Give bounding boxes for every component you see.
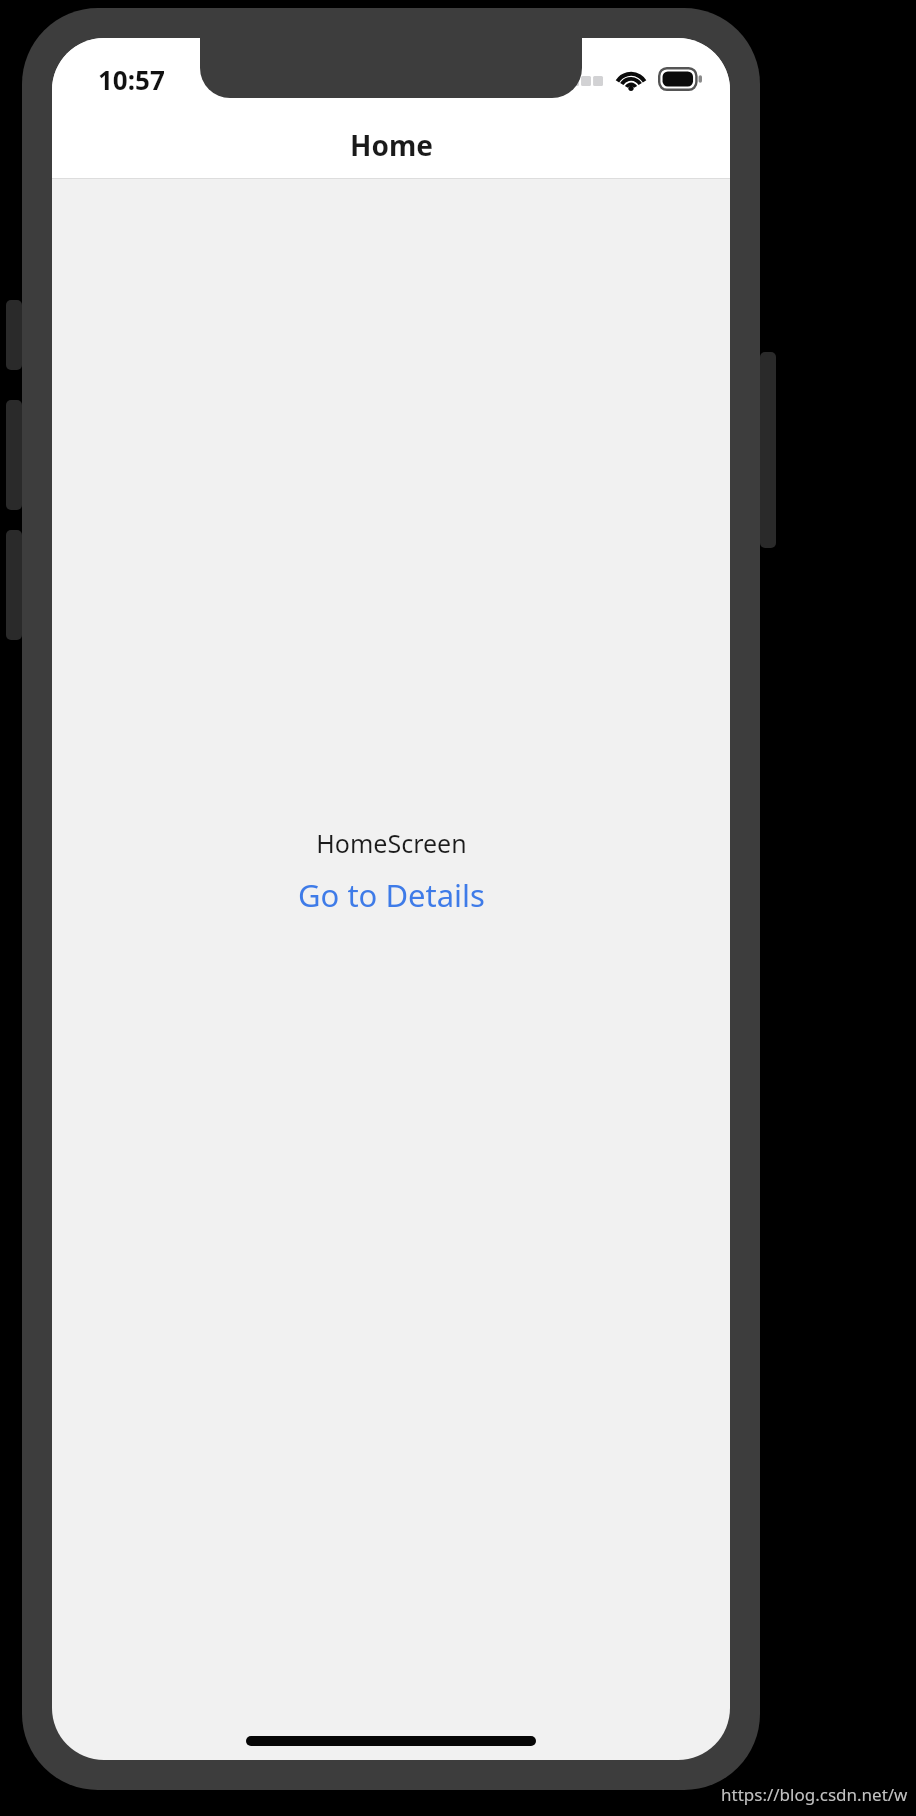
staticText: HomeScreen [316, 826, 467, 860]
staticText: Home [350, 126, 433, 164]
staticText: 10:57 [98, 62, 165, 97]
other: Power [760, 352, 776, 548]
other: Volume up [6, 400, 22, 510]
staticText: https://blog.csdn.net/w [721, 1783, 908, 1806]
other: Volume down [6, 530, 22, 640]
button[interactable]: Go to Details [292, 872, 491, 918]
other: Mute switch [6, 300, 22, 370]
staticText: Go to Details [298, 874, 485, 916]
